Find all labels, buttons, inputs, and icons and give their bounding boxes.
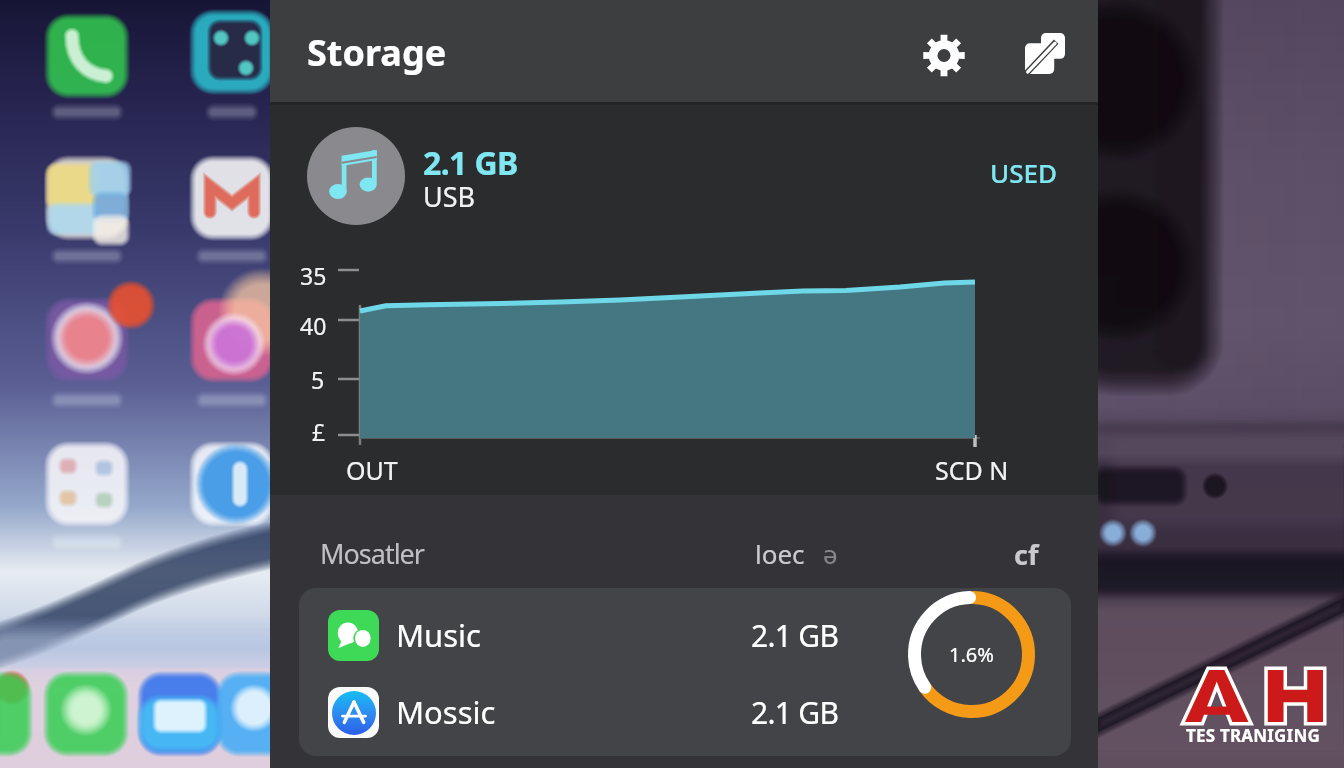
staticText: SCD N	[935, 453, 1009, 487]
staticText: USED	[990, 155, 1057, 190]
staticText: Mossic	[396, 691, 496, 733]
staticText: 35	[300, 260, 327, 291]
button[interactable]: Settings	[909, 20, 979, 90]
staticText: 1.6%	[949, 641, 994, 668]
staticText: USB	[423, 178, 476, 215]
staticText: TES TRANIGING	[1186, 724, 1320, 747]
staticText: £	[312, 416, 326, 447]
button[interactable]: Mossic	[299, 683, 1071, 737]
staticText: 2.1 GB	[751, 615, 839, 656]
staticText: cf	[1014, 536, 1039, 573]
staticText: OUT	[346, 453, 398, 487]
staticText: 2.1 GB	[423, 141, 518, 185]
staticText: 5	[311, 364, 325, 395]
staticText: Music	[396, 614, 482, 656]
staticText: Mosatler	[320, 535, 424, 572]
staticText: Storage	[307, 28, 447, 77]
staticText: 2.1 GB	[751, 692, 839, 733]
staticText: ə	[823, 536, 838, 571]
staticText: 40	[300, 310, 327, 341]
button[interactable]: Music	[299, 606, 1071, 660]
button[interactable]: Edit	[1010, 18, 1080, 88]
staticText: loec	[755, 536, 805, 571]
